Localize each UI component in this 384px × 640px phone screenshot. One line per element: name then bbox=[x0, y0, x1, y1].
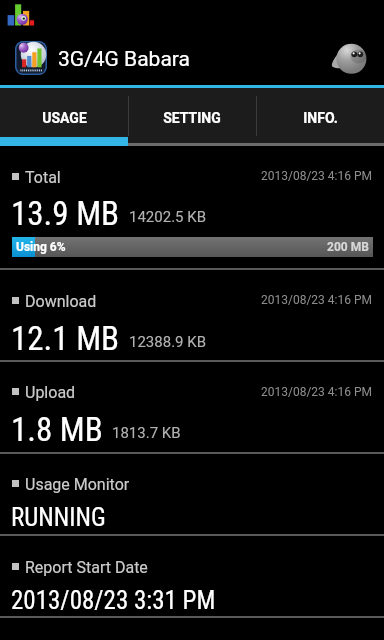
staticText: 14202.5 KB bbox=[129, 208, 207, 226]
staticText: 13.9 MB bbox=[11, 194, 120, 233]
staticText: Using 6% bbox=[16, 240, 66, 254]
staticText: Report Start Date bbox=[25, 558, 148, 577]
staticText: 1.8 MB bbox=[11, 410, 103, 449]
staticText: RUNNING bbox=[11, 503, 106, 532]
button[interactable]: App icon bbox=[15, 41, 47, 75]
staticText: INFO. bbox=[303, 110, 338, 126]
staticText: 2013/08/23 4:16 PM bbox=[261, 293, 372, 307]
staticText: Upload bbox=[25, 383, 76, 402]
staticText: SETTING bbox=[163, 110, 221, 126]
button[interactable]: Assistant bbox=[330, 40, 372, 76]
staticText: Usage Monitor bbox=[25, 475, 130, 494]
staticText: 2013/08/23 4:16 PM bbox=[261, 169, 372, 183]
staticText: 12.1 MB bbox=[11, 319, 120, 358]
staticText: Download bbox=[25, 292, 97, 311]
staticText: 2013/08/23 3:31 PM bbox=[11, 586, 216, 615]
staticText: 3G/4G Babara bbox=[58, 47, 190, 72]
staticText: 200 MB bbox=[327, 240, 369, 254]
button[interactable]: SETTING bbox=[128, 88, 256, 143]
staticText: USAGE bbox=[42, 110, 87, 126]
staticText: 12388.9 KB bbox=[129, 333, 207, 351]
button[interactable]: USAGE bbox=[0, 88, 128, 143]
button[interactable]: INFO. bbox=[256, 88, 384, 143]
staticText: 2013/08/23 4:16 PM bbox=[261, 385, 372, 399]
staticText: 1813.7 KB bbox=[112, 424, 181, 442]
staticText: Total bbox=[25, 168, 61, 187]
